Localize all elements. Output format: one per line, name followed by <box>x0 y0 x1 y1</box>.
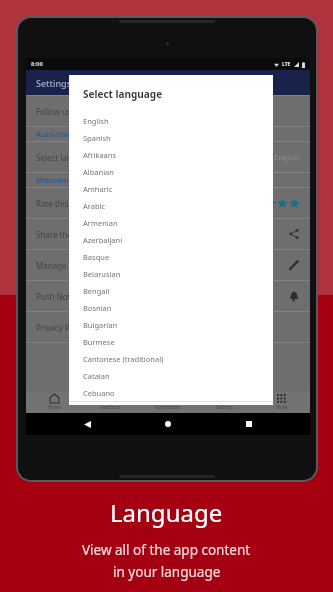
staticText: Azerbaijani <box>83 235 123 245</box>
staticText: Nomination <box>155 404 181 410</box>
button[interactable]: Home <box>161 417 175 431</box>
button[interactable]: Recents <box>242 417 256 431</box>
staticText: Burmese <box>83 337 115 347</box>
staticText: 8:00 <box>31 60 43 68</box>
staticText: Amharic <box>83 184 113 194</box>
staticText: Settings <box>216 404 234 410</box>
staticText: Albanian <box>83 167 114 177</box>
staticText: Privacy Policy <box>36 322 300 333</box>
staticText: View all of the app content <box>82 541 251 559</box>
staticText: Spanish <box>83 133 111 143</box>
button[interactable]: Amharic <box>69 180 273 197</box>
button[interactable]: Cebuano <box>69 384 273 401</box>
button[interactable]: Nomination <box>139 391 196 413</box>
staticText: Home <box>48 404 61 410</box>
staticText: More <box>276 404 288 410</box>
button[interactable]: Catalan <box>69 367 273 384</box>
other: Edit <box>288 259 300 271</box>
button[interactable]: Bosnian <box>69 299 273 316</box>
button[interactable]: Spanish <box>69 129 273 146</box>
staticText: Follow us on social media <box>36 106 300 117</box>
staticText: Afrikaans <box>83 150 117 160</box>
staticText: Select language <box>36 152 274 163</box>
button[interactable]: Privacy Policy <box>26 312 310 342</box>
button[interactable]: Burmese <box>69 333 273 350</box>
button[interactable]: Albanian <box>69 163 273 180</box>
button[interactable]: Rate this app <box>26 188 310 218</box>
staticText: Settings <box>36 77 72 89</box>
staticText: Feedback <box>100 404 121 410</box>
button[interactable]: Belarusian <box>69 265 273 282</box>
staticText: Bosnian <box>83 303 112 313</box>
button[interactable]: Back <box>80 417 94 431</box>
other: Share <box>288 228 300 240</box>
staticText: Miscellaneous <box>36 175 90 185</box>
staticText: Bengali <box>83 286 110 296</box>
button[interactable]: Azerbaijani <box>69 231 273 248</box>
button[interactable]: English <box>69 112 273 129</box>
staticText: in your language <box>113 563 221 581</box>
button[interactable]: Feedback <box>82 391 139 413</box>
staticText: Select language <box>83 87 163 101</box>
staticText: Cantonese (traditional) <box>83 354 164 364</box>
button[interactable]: Settings <box>196 391 253 413</box>
button[interactable]: Home <box>26 391 82 413</box>
button[interactable]: Afrikaans <box>69 146 273 163</box>
button[interactable]: Select language <box>26 142 310 172</box>
staticText: Arabic <box>83 201 106 211</box>
button[interactable]: Bulgarian <box>69 316 273 333</box>
button[interactable]: Share the app <box>26 219 310 249</box>
staticText: Manage Account <box>36 260 288 271</box>
button[interactable]: Push Notification <box>26 281 310 311</box>
staticText: English <box>274 152 300 162</box>
button[interactable]: Cantonese (traditional) <box>69 350 273 367</box>
other: Push notification <box>288 290 300 302</box>
staticText: English <box>83 116 109 126</box>
staticText: Catalan <box>83 371 110 381</box>
staticText: LTE <box>282 61 291 68</box>
button[interactable]: More <box>253 391 310 413</box>
staticText: Basque <box>83 252 110 262</box>
staticText: Share the app <box>36 229 288 240</box>
staticText: Belarusian <box>83 269 121 279</box>
button[interactable]: Armenian <box>69 214 273 231</box>
staticText: Push Notification <box>36 291 288 302</box>
staticText: Rate this app <box>36 198 241 209</box>
staticText: Armenian <box>83 218 118 228</box>
button[interactable]: Follow us on social media <box>26 96 310 126</box>
button[interactable]: Basque <box>69 248 273 265</box>
button[interactable]: Manage Account <box>26 250 310 280</box>
button[interactable]: Bengali <box>69 282 273 299</box>
button[interactable]: Arabic <box>69 197 273 214</box>
staticText: Auto-translate <box>36 129 91 139</box>
staticText: Cebuano <box>83 388 115 398</box>
staticText: Language <box>110 496 223 529</box>
staticText: Bulgarian <box>83 320 118 330</box>
